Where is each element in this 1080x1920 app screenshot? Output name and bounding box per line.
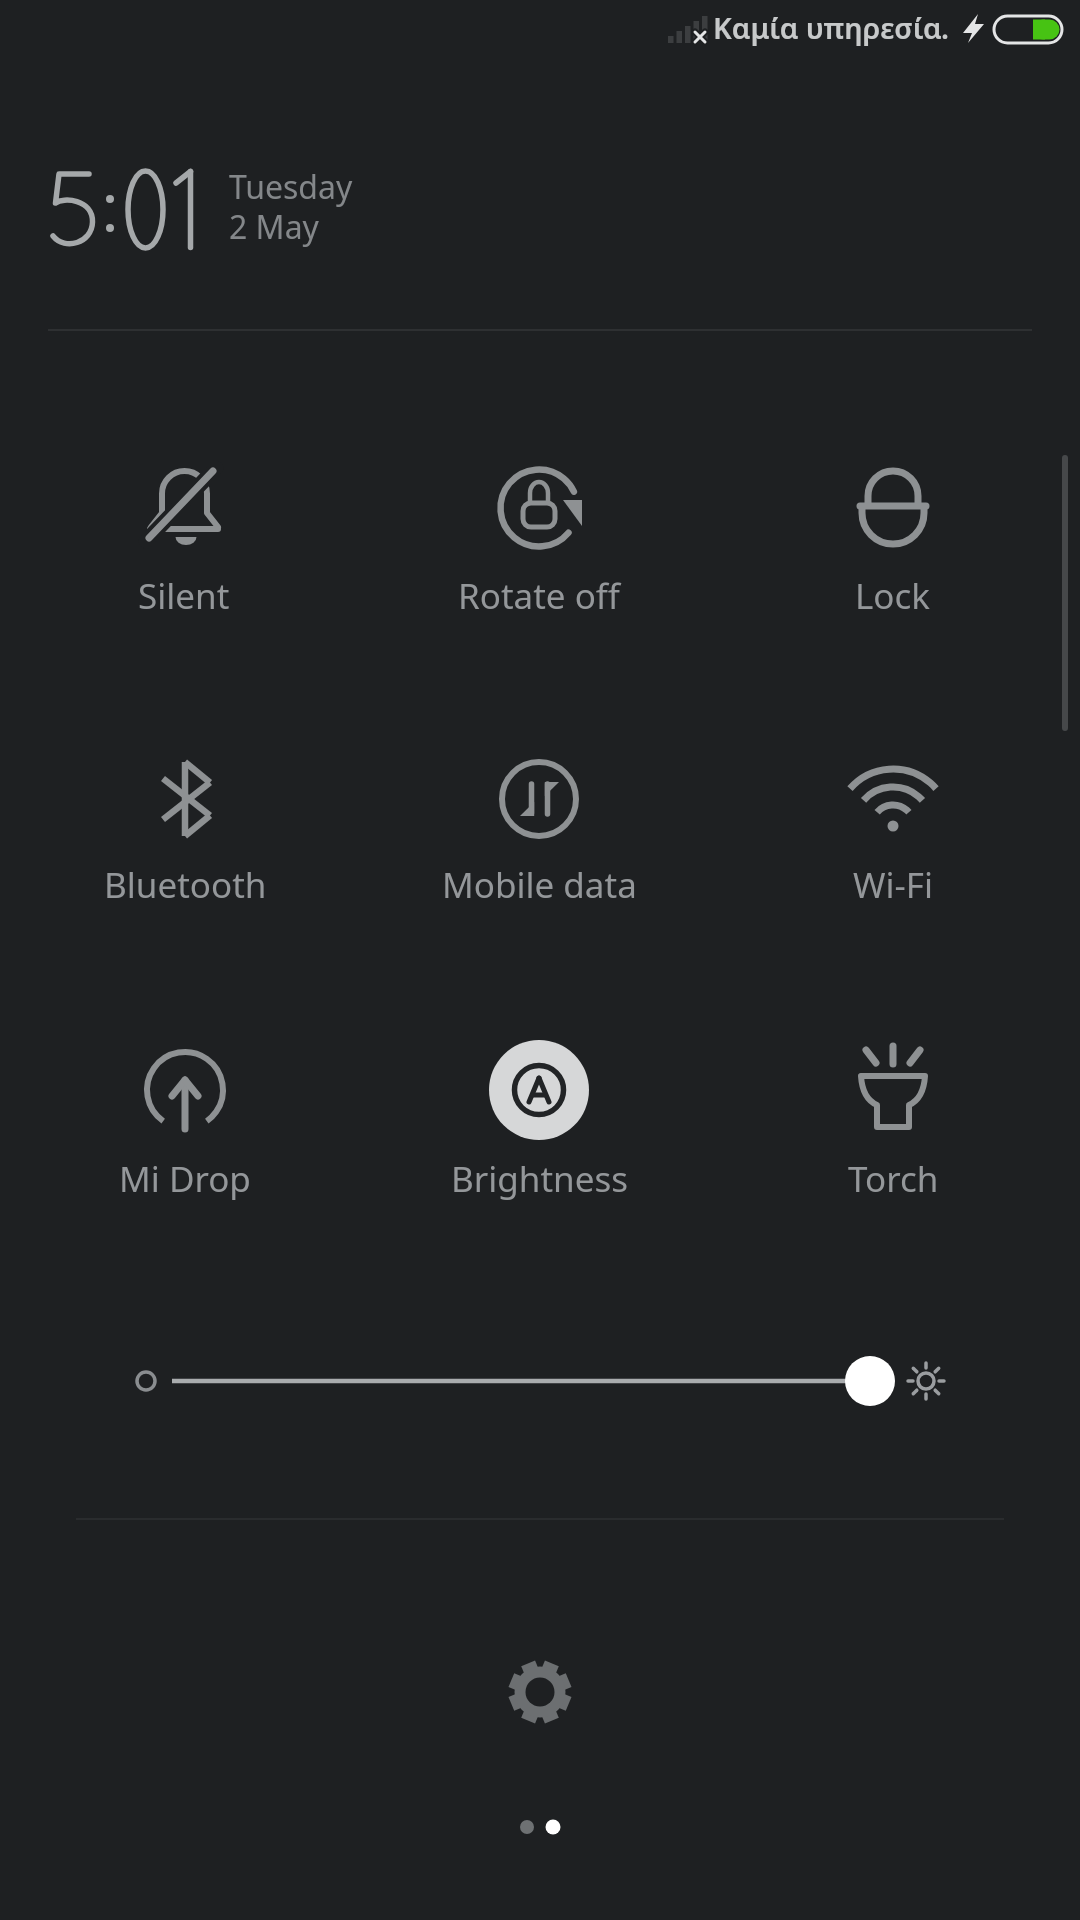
button[interactable] bbox=[70, 1023, 300, 1233]
button[interactable] bbox=[778, 440, 1008, 650]
button[interactable] bbox=[424, 732, 654, 942]
button[interactable] bbox=[69, 440, 299, 650]
staticText: Mi Drop bbox=[119, 1155, 251, 1203]
button[interactable] bbox=[424, 1023, 654, 1233]
staticText: Brightness bbox=[451, 1155, 628, 1203]
staticText: Tuesday bbox=[229, 165, 353, 209]
staticText: Bluetooth bbox=[104, 861, 267, 909]
button[interactable] bbox=[778, 1023, 1008, 1233]
staticText: Καμία υπηρεσία. bbox=[713, 8, 950, 47]
staticText: Silent bbox=[138, 572, 230, 620]
button[interactable] bbox=[424, 440, 654, 650]
button[interactable] bbox=[778, 732, 1008, 942]
staticText: Mobile data bbox=[442, 861, 637, 909]
staticText: 2 May bbox=[229, 205, 319, 249]
staticText: Rotate off bbox=[458, 572, 620, 620]
button[interactable] bbox=[120, 1340, 960, 1422]
button[interactable] bbox=[490, 1642, 590, 1742]
button[interactable] bbox=[70, 732, 300, 942]
staticText: Wi-Fi bbox=[853, 861, 934, 909]
staticText: Torch bbox=[848, 1155, 939, 1203]
staticText: Lock bbox=[855, 572, 931, 620]
